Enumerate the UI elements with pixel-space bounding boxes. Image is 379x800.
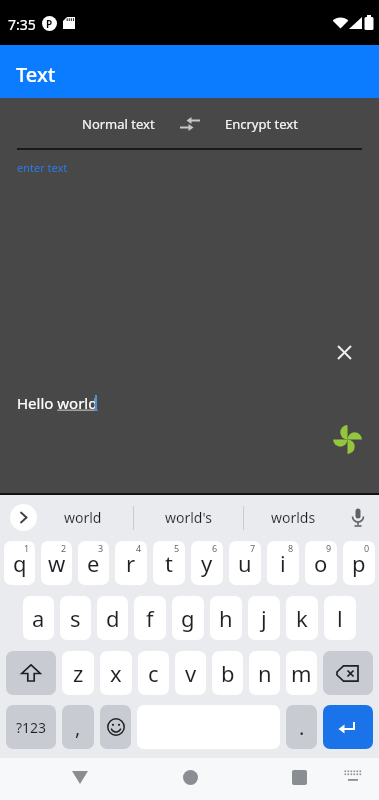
staticText: h [219, 603, 233, 633]
button[interactable]: k [286, 596, 318, 640]
button[interactable]: b [212, 651, 243, 695]
button[interactable]: , [62, 705, 94, 749]
button[interactable]: l [324, 596, 356, 640]
button[interactable]: t [153, 541, 185, 585]
button[interactable] [179, 116, 201, 132]
staticText: 7 [250, 542, 256, 554]
button[interactable] [174, 761, 206, 793]
staticText: x [110, 658, 122, 688]
button[interactable] [283, 761, 315, 793]
button[interactable]: o [305, 541, 337, 585]
staticText: b [221, 658, 235, 688]
staticText: f [146, 603, 154, 633]
button[interactable] [6, 651, 56, 695]
staticText: v [185, 658, 197, 688]
staticText: world [64, 508, 102, 527]
staticText: 9 [326, 542, 332, 554]
button[interactable]: s [60, 596, 91, 640]
staticText: 6 [212, 542, 218, 554]
button[interactable] [64, 761, 96, 793]
button[interactable]: r [115, 541, 147, 585]
button[interactable]: j [248, 596, 280, 640]
button[interactable]: . [286, 705, 317, 749]
staticText: Normal text [82, 115, 155, 133]
button[interactable]: world's [134, 495, 243, 540]
button[interactable] [343, 495, 379, 540]
staticText: 4 [136, 542, 142, 554]
staticText: w [48, 548, 66, 578]
staticText: P [46, 17, 53, 31]
staticText: 2 [61, 542, 67, 554]
button[interactable]: d [97, 596, 128, 640]
staticText: o [314, 548, 328, 578]
staticText: 0 [364, 542, 370, 554]
staticText: worlds [271, 508, 316, 527]
staticText: enter text [17, 160, 68, 175]
button[interactable]: c [138, 651, 169, 695]
staticText: j [261, 603, 267, 633]
button[interactable] [330, 338, 358, 366]
button[interactable] [338, 761, 368, 791]
button[interactable] [323, 705, 373, 749]
staticText: world's [165, 508, 212, 527]
button[interactable]: f [134, 596, 166, 640]
button[interactable]: x [100, 651, 132, 695]
staticText: l [337, 603, 343, 633]
button[interactable]: v [175, 651, 206, 695]
staticText: y [201, 548, 213, 578]
button[interactable]: worlds [244, 495, 343, 540]
staticText: , [75, 714, 81, 741]
staticText: k [296, 603, 308, 633]
button[interactable]: m [286, 651, 317, 695]
button[interactable] [0, 495, 46, 540]
staticText: p [352, 548, 366, 578]
staticText: z [73, 658, 84, 688]
staticText: m [291, 658, 312, 688]
staticText: Hello world [17, 393, 98, 413]
button[interactable]: ?123 [6, 705, 56, 749]
button[interactable]: Normal text [82, 115, 155, 133]
staticText: 3 [98, 542, 104, 554]
button[interactable]: g [172, 596, 204, 640]
staticText: u [238, 548, 252, 578]
button[interactable]: y [191, 541, 223, 585]
button[interactable]: e [78, 541, 109, 585]
staticText: Text [16, 61, 56, 88]
button[interactable]: world [46, 495, 133, 540]
staticText: Encrypt text [225, 115, 298, 133]
button[interactable] [100, 705, 131, 749]
button[interactable] [323, 651, 373, 695]
staticText: t [165, 548, 173, 578]
staticText: d [106, 603, 120, 633]
staticText: 1 [24, 542, 30, 554]
staticText: r [126, 548, 136, 578]
button[interactable]: h [210, 596, 242, 640]
staticText: 7:35 [8, 15, 36, 34]
staticText: c [148, 658, 159, 688]
button[interactable]: a [23, 596, 54, 640]
staticText: n [258, 658, 272, 688]
staticText: a [32, 603, 45, 633]
button[interactable]: u [229, 541, 261, 585]
button[interactable]: q [4, 541, 35, 585]
button[interactable] [331, 423, 364, 456]
button[interactable]: p [343, 541, 375, 585]
staticText: q [13, 548, 27, 578]
staticText: g [181, 603, 195, 633]
button[interactable]: z [62, 651, 94, 695]
button[interactable]: i [267, 541, 299, 585]
button[interactable]: w [41, 541, 72, 585]
staticText: ?123 [16, 718, 47, 737]
staticText: 5 [174, 542, 180, 554]
staticText: s [70, 603, 81, 633]
staticText: i [280, 548, 286, 578]
staticText: 8 [288, 542, 294, 554]
staticText: . [299, 714, 305, 741]
button[interactable]: n [249, 651, 280, 695]
button[interactable]: Encrypt text [225, 115, 298, 133]
staticText: e [87, 548, 100, 578]
